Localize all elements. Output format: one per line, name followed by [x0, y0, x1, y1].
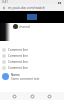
- button[interactable]: Comment line: [2, 66, 62, 70]
- button[interactable]: Comment line: [2, 60, 62, 64]
- button[interactable]: Nav: [12, 94, 17, 99]
- staticText: Comment line: [8, 66, 28, 70]
- staticText: Some comment text: [11, 77, 40, 81]
- staticText: 9:41: [2, 0, 8, 4]
- staticText: Comment line: [8, 48, 28, 52]
- button[interactable]: Back: [0, 4, 64, 11]
- button[interactable]: Comment line: [2, 48, 62, 52]
- button[interactable]: Name: [2, 73, 62, 81]
- button[interactable]: [0, 11, 64, 23]
- staticText: ▮▮: [58, 1, 62, 4]
- button[interactable]: channel: [13, 24, 64, 29]
- button[interactable]: Back: [2, 6, 6, 10]
- button[interactable]: Comment line: [2, 54, 62, 58]
- staticText: m.youtube.com/watch: [8, 5, 45, 10]
- staticText: Comment line: [8, 54, 28, 58]
- button[interactable]: Nav: [47, 94, 52, 99]
- staticText: Name: [11, 73, 20, 77]
- button[interactable]: Nav: [30, 94, 35, 99]
- staticText: Comment line: [8, 60, 28, 64]
- staticText: channel: [19, 25, 31, 29]
